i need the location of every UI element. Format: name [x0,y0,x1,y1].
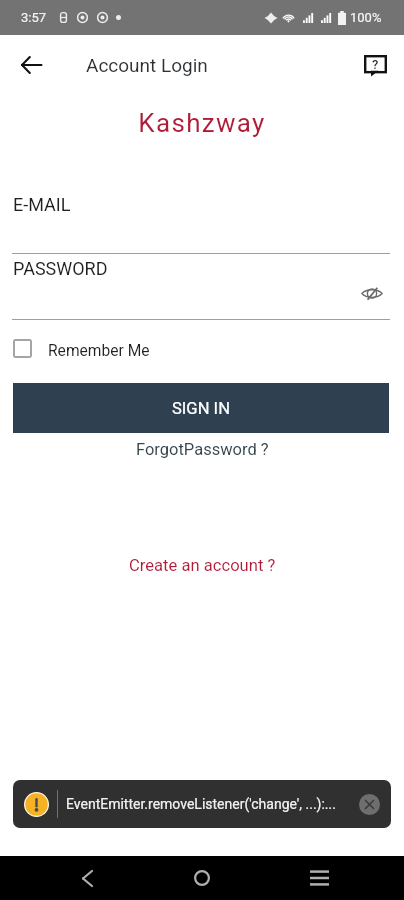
staticText: Remember Me [48,342,150,360]
staticText: E-MAIL [13,194,71,215]
button[interactable]: Show password [359,280,385,306]
button[interactable]: Help [360,51,390,81]
staticText: SIGN IN [172,399,230,418]
staticText: 3:57 [21,10,47,25]
button[interactable]: ForgotPassword ? [136,440,269,459]
button[interactable]: Back [65,856,109,900]
staticText: EventEmitter.removeListener('change', ..… [66,796,336,812]
button[interactable]: Home [180,856,224,900]
button[interactable]: EventEmitter.removeListener('change', ..… [13,780,391,828]
button[interactable]: Recents [297,856,341,900]
staticText: 100% [350,10,382,25]
staticText: ? [372,57,379,72]
button[interactable]: Create an account ? [129,556,276,575]
button[interactable]: Dismiss [359,794,380,815]
button[interactable]: Back [17,51,45,79]
button[interactable]: Remember Me [13,339,150,363]
staticText: Account Login [86,54,208,76]
staticText: PASSWORD [13,258,108,279]
staticText: Kashzway [0,108,404,138]
button[interactable]: SIGN IN [13,383,389,433]
